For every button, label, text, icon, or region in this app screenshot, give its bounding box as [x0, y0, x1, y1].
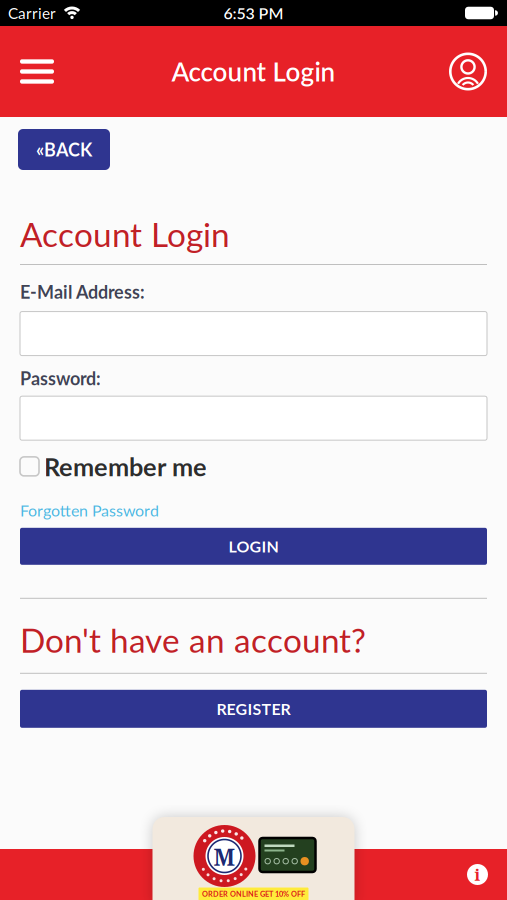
staticText: Password:	[20, 368, 101, 389]
staticText: «BACK	[36, 139, 92, 160]
staticText: Remember me	[44, 451, 207, 482]
staticText: Don't have an account?	[20, 620, 366, 660]
staticText: M	[213, 842, 235, 872]
button[interactable]: Forgotten Password	[0, 501, 159, 520]
staticText: i	[474, 864, 480, 885]
button[interactable]: «BACK	[18, 129, 110, 170]
staticText: ORDER ONLINE GET 10% OFF	[202, 890, 305, 898]
button[interactable]: LOGIN	[20, 528, 487, 565]
staticText: Forgotten Password	[20, 501, 159, 520]
button[interactable]	[448, 51, 507, 91]
staticText: LOGIN	[228, 537, 278, 556]
button[interactable]: M	[152, 817, 354, 900]
staticText: 6:53 PM	[223, 3, 283, 23]
button[interactable]: Remember me	[0, 451, 207, 482]
staticText: REGISTER	[216, 699, 290, 718]
button[interactable]: i	[467, 864, 507, 885]
staticText: Account Login	[20, 214, 230, 254]
button[interactable]	[0, 51, 54, 92]
staticText: E-Mail Address:	[20, 281, 145, 303]
staticText: Carrier	[8, 4, 56, 22]
button[interactable]: REGISTER	[20, 690, 487, 728]
staticText: Account Login	[171, 56, 335, 87]
